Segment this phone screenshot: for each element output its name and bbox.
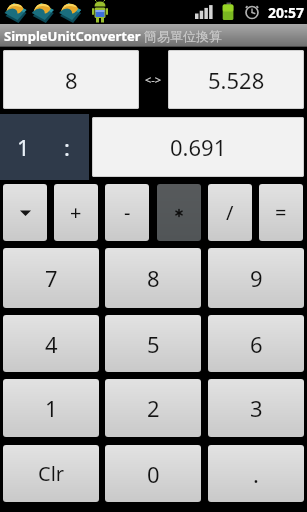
staticText: - bbox=[124, 199, 131, 226]
button[interactable]: 5 bbox=[105, 315, 201, 372]
button[interactable]: 3 bbox=[208, 379, 304, 437]
button[interactable]: 0.691 bbox=[92, 117, 304, 177]
staticText: 4 bbox=[45, 329, 58, 359]
staticText: 2 bbox=[147, 393, 160, 423]
button[interactable]: <-> bbox=[139, 50, 168, 109]
staticText: 5 bbox=[147, 329, 160, 359]
button[interactable]: - bbox=[105, 184, 149, 241]
staticText: . bbox=[253, 459, 259, 489]
button[interactable]: . bbox=[208, 445, 304, 502]
button[interactable]: 7 bbox=[3, 248, 99, 308]
button[interactable]: 8 bbox=[3, 50, 139, 109]
button[interactable]: 0 bbox=[105, 445, 201, 502]
staticText: 9 bbox=[250, 263, 263, 293]
button[interactable]: / bbox=[208, 184, 252, 241]
button[interactable]: + bbox=[54, 184, 98, 241]
staticText: 20:57 bbox=[268, 3, 304, 22]
staticText: 6 bbox=[250, 329, 263, 359]
staticText: 1 bbox=[45, 393, 58, 423]
button[interactable] bbox=[157, 184, 201, 241]
staticText: 0 bbox=[147, 459, 160, 489]
button[interactable]: 5.528 bbox=[168, 50, 304, 109]
staticText: 7 bbox=[45, 263, 58, 293]
button[interactable]: 2 bbox=[105, 379, 201, 437]
button[interactable]: 1 bbox=[3, 379, 99, 437]
staticText: 8 bbox=[65, 65, 78, 95]
button[interactable]: Clr bbox=[3, 445, 99, 502]
staticText: 8 bbox=[147, 263, 160, 293]
button[interactable]: 6 bbox=[208, 315, 304, 372]
staticText: 0.691 bbox=[170, 132, 227, 162]
button[interactable]: = bbox=[259, 184, 303, 241]
staticText: / bbox=[226, 199, 234, 226]
staticText: SimpleUnitConverter 簡易單位換算 bbox=[4, 27, 222, 45]
button[interactable]: 1 bbox=[0, 114, 89, 180]
button[interactable] bbox=[3, 184, 47, 241]
staticText: Clr bbox=[38, 460, 65, 487]
staticText: = bbox=[275, 199, 287, 226]
button[interactable]: 9 bbox=[208, 248, 304, 308]
staticText: + bbox=[70, 199, 82, 226]
staticText: 1 bbox=[17, 132, 30, 162]
staticText: 3 bbox=[250, 393, 263, 423]
staticText: 5.528 bbox=[208, 65, 265, 95]
staticText: : bbox=[64, 132, 70, 162]
button[interactable]: 8 bbox=[105, 248, 201, 308]
staticText: <-> bbox=[145, 72, 162, 87]
button[interactable]: 4 bbox=[3, 315, 99, 372]
